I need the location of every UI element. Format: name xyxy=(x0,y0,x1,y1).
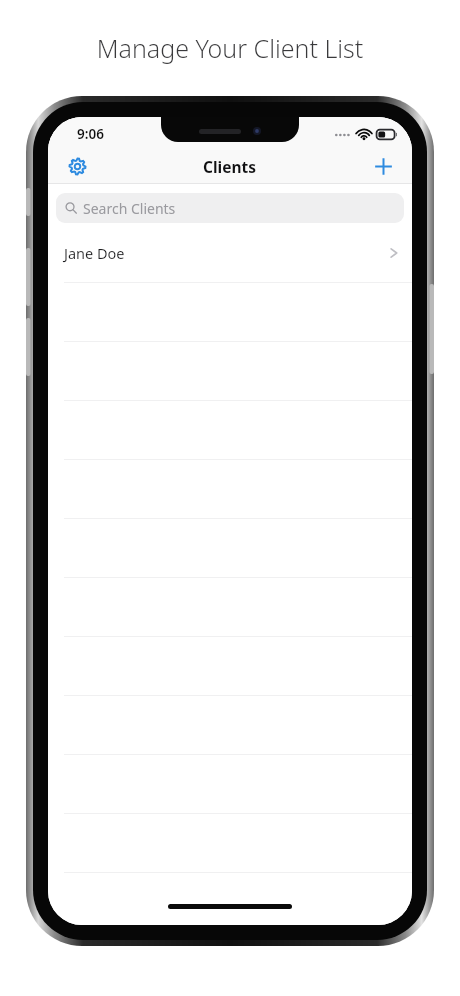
button[interactable]: Search Clients xyxy=(56,193,404,223)
button[interactable]: Add client xyxy=(363,149,403,183)
staticText: 9:06 xyxy=(77,125,104,143)
button[interactable]: Jane Doe xyxy=(48,231,412,274)
staticText: Search Clients xyxy=(83,199,176,218)
button[interactable]: Settings xyxy=(57,149,97,183)
staticText: Manage Your Client List xyxy=(0,31,460,65)
staticText: Clients xyxy=(203,156,257,177)
staticText: Jane Doe xyxy=(64,243,390,263)
